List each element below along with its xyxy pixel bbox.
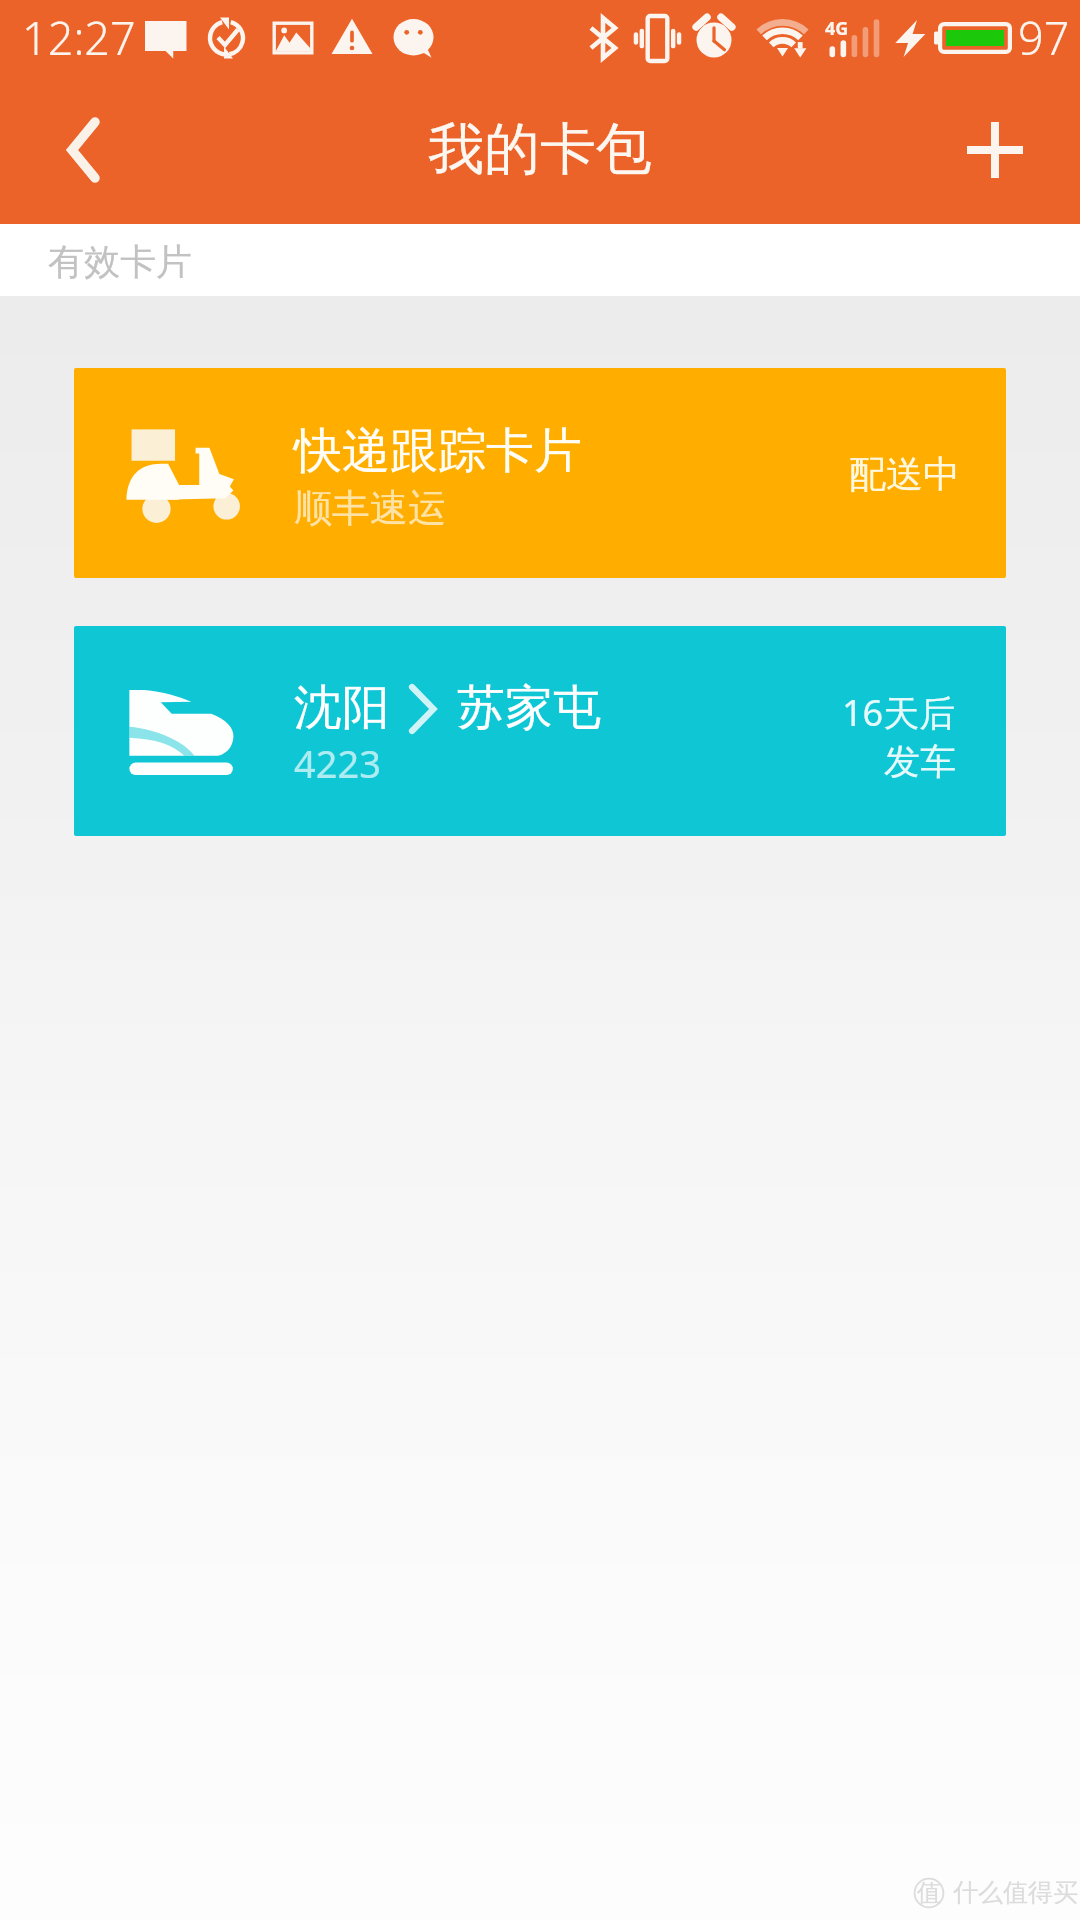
staticText: 有效卡片 xyxy=(48,239,192,284)
button[interactable]: 沈阳 xyxy=(74,626,1006,836)
button[interactable]: Add card xyxy=(928,76,1080,224)
button[interactable]: Back xyxy=(0,76,152,224)
staticText: 苏家屯 xyxy=(457,678,601,738)
staticText: 配送中 xyxy=(849,451,960,498)
staticText: 发车 xyxy=(884,739,956,784)
staticText: 快递跟踪卡片 xyxy=(294,421,582,481)
staticText: 我的卡包 xyxy=(428,114,652,185)
staticText: 沈阳 xyxy=(294,678,390,738)
staticText: 值 xyxy=(917,1878,941,1908)
staticText: 什么值得买 xyxy=(953,1877,1078,1908)
staticText: 12:27 xyxy=(22,7,136,68)
staticText: 顺丰速运 xyxy=(294,484,446,532)
staticText: 4223 xyxy=(294,737,381,789)
staticText: 4G xyxy=(825,16,849,41)
staticText: 97 xyxy=(1018,7,1070,68)
staticText: 16天后 xyxy=(842,688,956,737)
button[interactable]: 快递跟踪卡片 xyxy=(74,368,1006,578)
